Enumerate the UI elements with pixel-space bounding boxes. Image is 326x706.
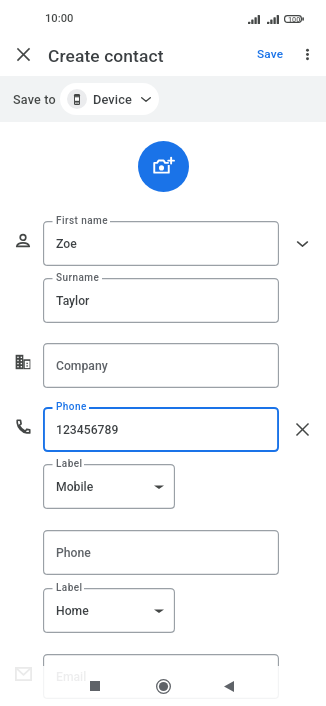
- button[interactable]: Recent apps: [78, 669, 112, 703]
- button[interactable]: Phone: [43, 530, 279, 575]
- staticText: Label: [56, 458, 83, 470]
- button[interactable]: Company: [43, 343, 279, 388]
- button[interactable]: Phone: [43, 407, 279, 452]
- staticText: Home: [56, 604, 89, 618]
- staticText: Zoe: [56, 237, 77, 251]
- button[interactable]: Label: [43, 588, 175, 633]
- staticText: Label: [56, 582, 83, 594]
- staticText: 10:00: [45, 12, 74, 25]
- staticText: First name: [56, 215, 109, 227]
- staticText: Phone: [56, 401, 87, 413]
- button[interactable]: Add photo: [138, 141, 189, 192]
- staticText: Taylor: [56, 294, 90, 308]
- button[interactable]: Label: [43, 464, 175, 509]
- staticText: Surname: [56, 272, 100, 284]
- staticText: Create contact: [48, 46, 164, 66]
- button[interactable]: Surname: [43, 278, 279, 323]
- button[interactable]: Close: [7, 38, 39, 70]
- button[interactable]: Device: [60, 83, 159, 115]
- button[interactable]: Home: [146, 669, 180, 703]
- button[interactable]: Expand name fields: [289, 230, 315, 256]
- staticText: Save to: [13, 92, 56, 107]
- button[interactable]: Back: [212, 669, 246, 703]
- button[interactable]: More options: [294, 41, 320, 67]
- staticText: Email: [56, 670, 87, 684]
- staticText: Company: [56, 359, 108, 373]
- button[interactable]: First name: [43, 221, 279, 266]
- staticText: 100: [288, 15, 301, 23]
- staticText: Save: [257, 47, 284, 61]
- staticText: 123456789: [56, 423, 119, 437]
- staticText: Phone: [56, 546, 91, 560]
- button[interactable]: Clear phone number: [289, 416, 315, 442]
- button[interactable]: Save: [252, 43, 289, 65]
- staticText: Device: [93, 92, 132, 107]
- staticText: Mobile: [56, 480, 94, 494]
- button[interactable]: Email: [43, 654, 279, 699]
